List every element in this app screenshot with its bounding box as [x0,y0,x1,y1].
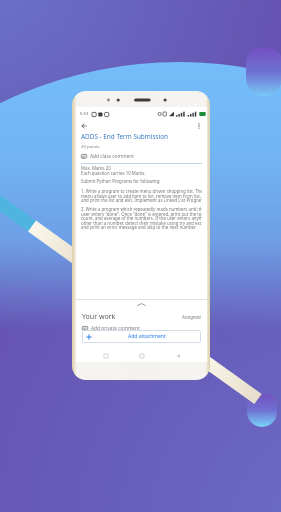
button[interactable]: Expand [76,300,207,309]
staticText: Add attachment [128,333,166,340]
staticText: menu allows user to add item to list, re… [81,193,202,199]
staticText: 20 points [81,143,100,149]
staticText: ADDS - End Term Submission [81,132,168,141]
staticText: 5:53 [80,111,89,117]
button[interactable]: Back [171,349,184,362]
staticText: other than a number, detect their mistak… [81,220,202,226]
button[interactable]: Add private comment [82,323,201,333]
button[interactable]: More options [191,118,207,134]
button[interactable]: Add class comment [81,153,202,160]
button[interactable]: Home [135,349,148,362]
staticText: Submit Python Programs for following: [81,178,161,184]
staticText: and print the list and exit. Implement a… [81,197,202,203]
staticText: 2. Write a program which repeatedly read… [81,206,202,212]
staticText: Your work [82,312,116,322]
staticText: Each question carries 10 Marks. [81,170,146,176]
staticText: 1. Write a program to create menu driven… [81,188,202,194]
button[interactable]: Add attachment [82,330,201,343]
button[interactable]: Back [76,118,92,134]
staticText: user enters "done". Once "done" is enter… [81,211,202,217]
staticText: Add private comment [91,325,140,332]
staticText: Add class comment [90,153,134,160]
staticText: Assigned [182,314,201,320]
staticText: count, and average of the numbers. If th… [81,215,202,221]
staticText: Max. Marks 20 [81,165,111,171]
button[interactable]: Recents [99,349,112,362]
staticText: and print an error message and skip to t… [81,224,197,230]
